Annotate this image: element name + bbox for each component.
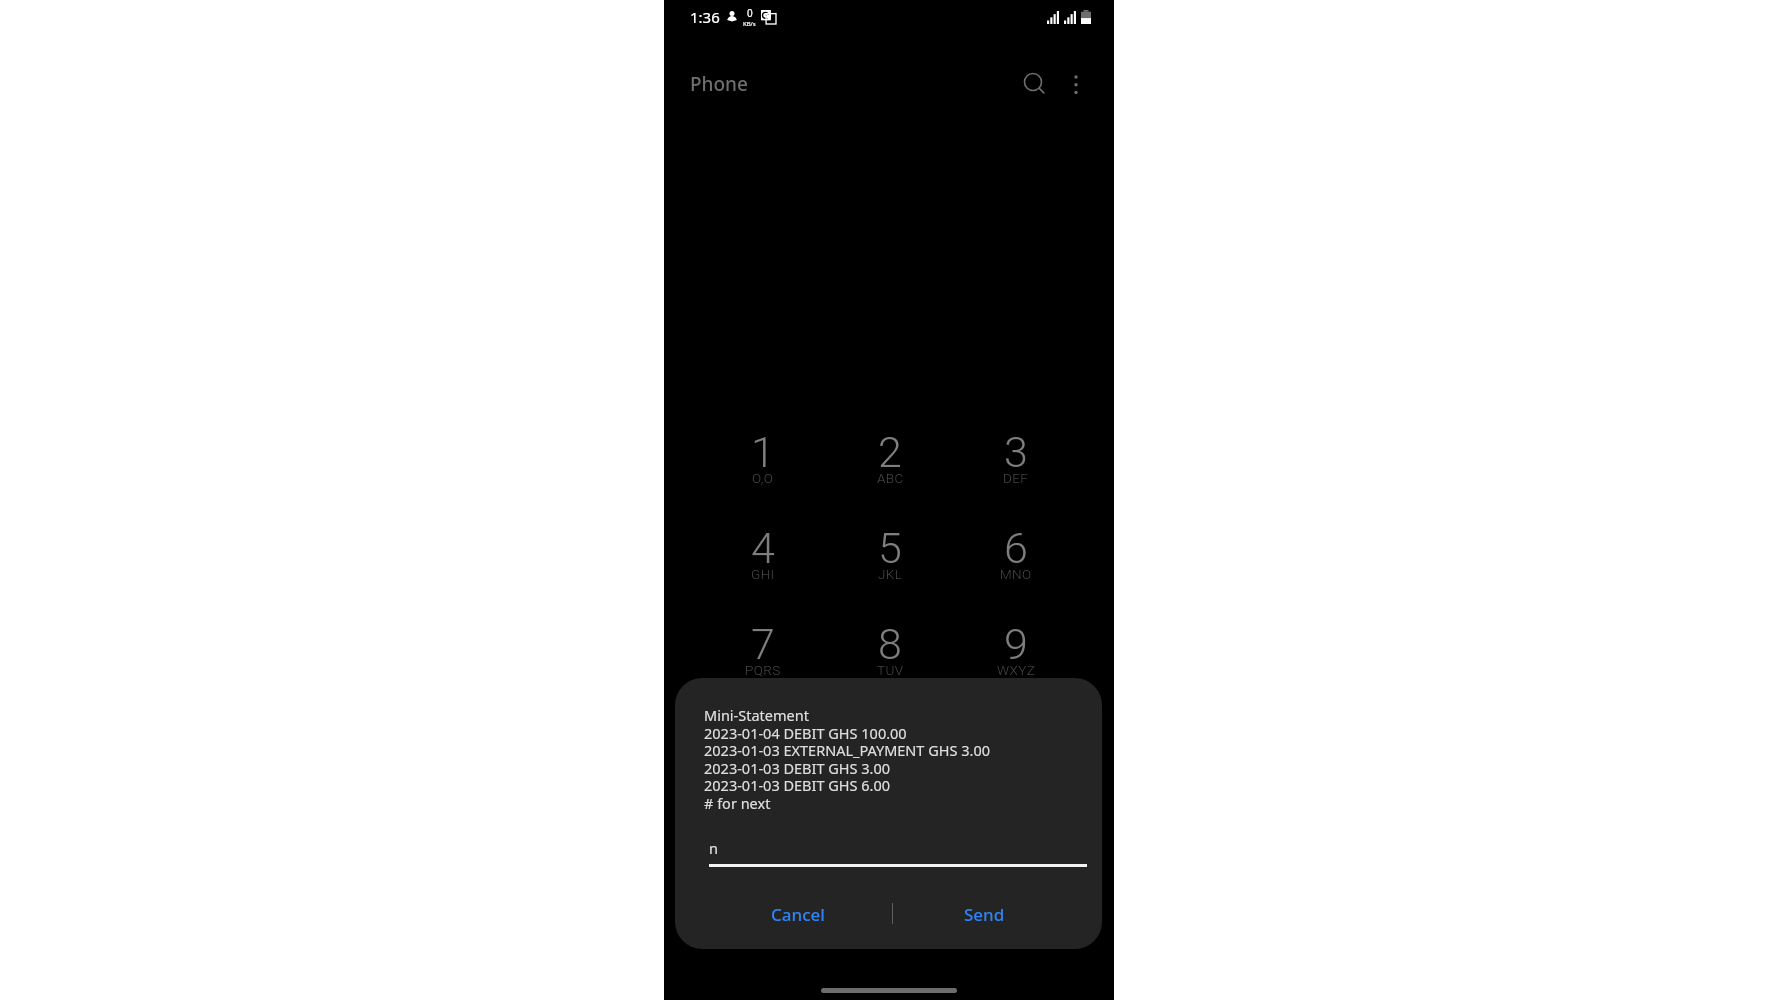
button[interactable]: 1 [700, 417, 826, 510]
button[interactable]: 5 [827, 513, 953, 606]
button[interactable]: 6 [953, 513, 1079, 606]
staticText: 2023-01-03 DEBIT GHS 6.00 [704, 775, 891, 795]
staticText: 1:36 [690, 7, 720, 27]
staticText: # for next [704, 793, 771, 813]
staticText: Mini-Statement [704, 705, 809, 725]
staticText: Cancel [771, 903, 825, 926]
staticText: 1 [751, 427, 775, 477]
staticText: DEF [1003, 470, 1029, 486]
staticText: PQRS [745, 662, 781, 678]
button[interactable]: 7 [700, 609, 826, 702]
button[interactable]: More options [1054, 61, 1098, 105]
button[interactable]: Cancel [707, 892, 889, 936]
button[interactable]: 3 [953, 417, 1079, 510]
staticText: MNO [1000, 566, 1032, 582]
staticText: 2 [878, 427, 902, 477]
staticText: 5 [878, 523, 902, 573]
staticText: 7 [751, 619, 775, 669]
staticText: n [709, 838, 718, 858]
staticText: Phone [690, 71, 748, 97]
staticText: JKL [878, 566, 903, 582]
staticText: 2023-01-04 DEBIT GHS 100.00 [704, 723, 907, 743]
button[interactable]: 2 [827, 417, 953, 510]
staticText: KB/s [743, 20, 756, 28]
staticText: 6 [1004, 523, 1028, 573]
staticText: 2023-01-03 DEBIT GHS 3.00 [704, 758, 891, 778]
button[interactable]: Search [1011, 61, 1055, 105]
staticText: TUV [877, 662, 904, 678]
button[interactable]: 8 [827, 609, 953, 702]
staticText: 9 [1004, 619, 1028, 669]
staticText: 2023-01-03 EXTERNAL_PAYMENT GHS 3.00 [704, 740, 990, 760]
staticText: GHI [751, 566, 775, 582]
staticText: 3 [1004, 427, 1028, 477]
staticText: O,O [752, 470, 774, 486]
staticText: ABC [877, 470, 904, 486]
staticText: Send [964, 903, 1005, 926]
staticText: WXYZ [997, 662, 1036, 678]
staticText: 0 [747, 6, 753, 20]
staticText: 4 [751, 523, 775, 573]
button[interactable]: 9 [953, 609, 1079, 702]
button[interactable]: Send [893, 892, 1075, 936]
staticText: 8 [878, 619, 902, 669]
button[interactable]: 4 [700, 513, 826, 606]
